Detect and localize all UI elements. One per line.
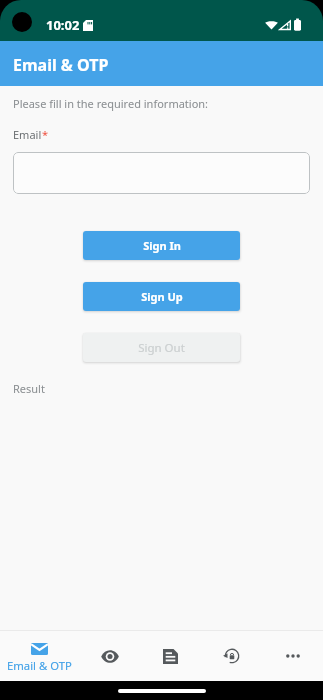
button[interactable]: Sign Out	[83, 333, 240, 362]
staticText: Email	[13, 127, 42, 142]
button[interactable]	[13, 152, 310, 194]
button[interactable]: Sign In	[83, 231, 240, 260]
button[interactable]: History	[201, 631, 262, 681]
button[interactable]: Documents	[140, 631, 201, 681]
staticText: 10:02	[46, 16, 80, 34]
button[interactable]: More	[262, 631, 323, 681]
button[interactable]: Preview	[79, 631, 140, 681]
button[interactable]: Sign Up	[83, 282, 240, 311]
staticText: Please fill in the required information:	[13, 96, 209, 111]
staticText: Sign Out	[138, 340, 185, 356]
staticText: Email & OTP	[13, 54, 109, 76]
staticText: Email & OTP	[7, 658, 72, 673]
staticText: Sign Up	[141, 289, 183, 304]
button[interactable]: Email & OTP	[0, 631, 79, 681]
staticText: Result	[13, 381, 45, 396]
staticText: Sign In	[143, 238, 181, 253]
staticText: *	[42, 127, 49, 142]
